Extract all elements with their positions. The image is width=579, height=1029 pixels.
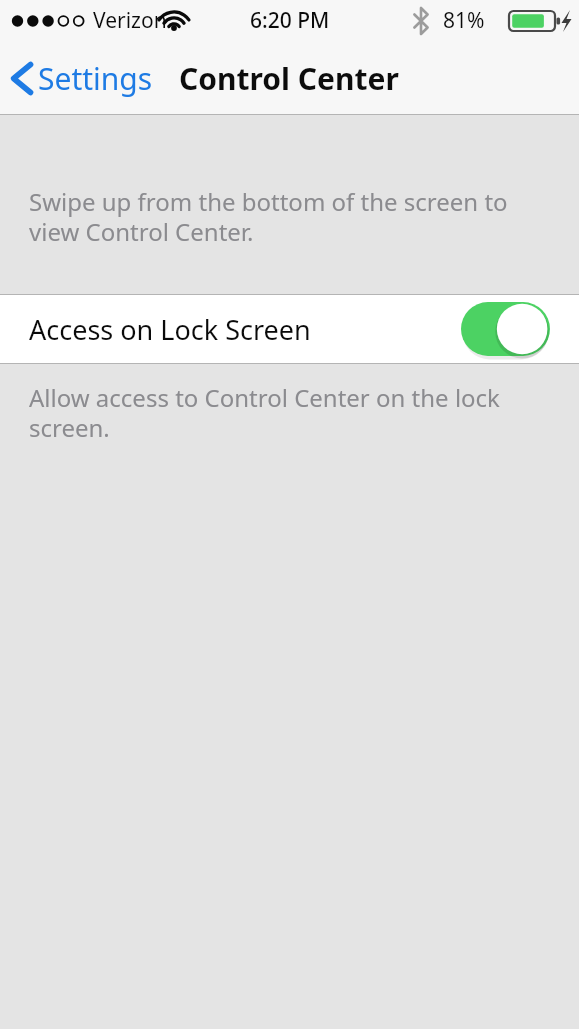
staticText: Swipe up from the bottom of the screen t…: [29, 185, 524, 248]
staticText: Verizon: [93, 6, 167, 35]
other: Back: [9, 61, 36, 96]
staticText: 6:20 PM: [250, 6, 330, 35]
staticText: Control Center: [179, 58, 399, 99]
button[interactable]: Access on Lock Screen, on: [461, 301, 550, 357]
button[interactable]: Access on Lock Screen: [0, 295, 579, 363]
staticText: Allow access to Control Center on the lo…: [29, 381, 524, 444]
staticText: 81%: [443, 6, 485, 35]
staticText: Access on Lock Screen: [29, 311, 311, 348]
button[interactable]: Back: [0, 50, 167, 107]
staticText: Settings: [38, 58, 153, 99]
